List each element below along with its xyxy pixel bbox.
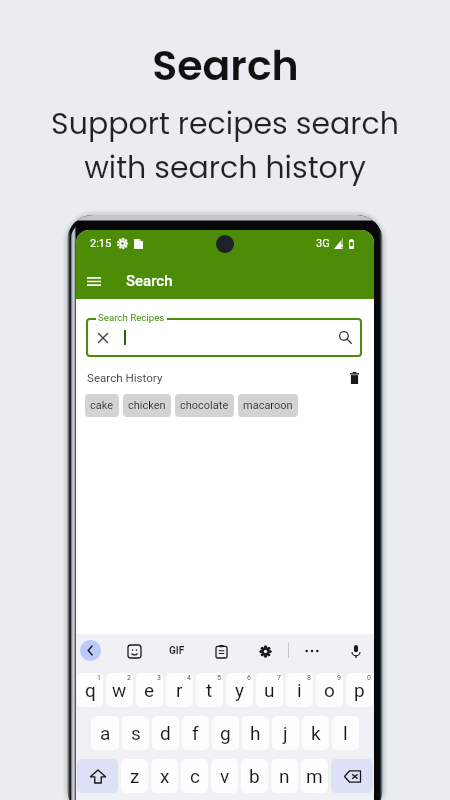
- staticText: 4: [187, 674, 191, 682]
- button[interactable]: h: [242, 716, 269, 750]
- staticText: 8: [307, 674, 311, 682]
- staticText: 2: [127, 674, 131, 682]
- button[interactable]: z: [121, 759, 148, 793]
- staticText: 1: [97, 674, 101, 682]
- button[interactable]: Back: [80, 640, 101, 661]
- staticText: r: [176, 679, 183, 701]
- button[interactable]: p: [346, 673, 373, 707]
- staticText: macaroon: [243, 399, 293, 412]
- button[interactable]: Stickers: [124, 641, 144, 661]
- button[interactable]: q: [77, 673, 103, 707]
- button[interactable]: Clear search: [98, 333, 108, 343]
- staticText: w: [112, 679, 127, 701]
- staticText: n: [279, 765, 290, 787]
- staticText: a: [100, 722, 111, 744]
- staticText: z: [130, 765, 140, 787]
- staticText: chocolate: [180, 399, 229, 412]
- staticText: GIF: [169, 645, 185, 657]
- button[interactable]: w: [106, 673, 133, 707]
- button[interactable]: More options: [302, 641, 322, 661]
- staticText: 2:15: [90, 237, 112, 250]
- staticText: x: [160, 765, 170, 787]
- staticText: g: [220, 722, 231, 744]
- staticText: 3: [157, 674, 161, 682]
- button[interactable]: m: [301, 759, 328, 793]
- button[interactable]: Keyboard settings: [255, 641, 275, 661]
- staticText: Search: [126, 272, 173, 290]
- staticText: f: [192, 722, 199, 744]
- staticText: Search Recipes: [98, 312, 165, 323]
- button[interactable]: v: [211, 759, 238, 793]
- button[interactable]: r: [166, 673, 193, 707]
- staticText: e: [144, 679, 155, 701]
- button[interactable]: x: [151, 759, 178, 793]
- staticText: 5: [217, 674, 221, 682]
- staticText: o: [324, 679, 335, 701]
- button[interactable]: Clipboard: [211, 641, 231, 661]
- staticText: t: [206, 679, 213, 701]
- button[interactable]: t: [196, 673, 223, 707]
- staticText: h: [250, 722, 261, 744]
- staticText: q: [85, 679, 96, 701]
- staticText: j: [283, 722, 288, 744]
- staticText: k: [311, 722, 321, 744]
- staticText: Search: [152, 37, 299, 94]
- button[interactable]: s: [122, 716, 149, 750]
- staticText: p: [354, 679, 365, 701]
- button[interactable]: y: [226, 673, 253, 707]
- staticText: 9: [337, 674, 341, 682]
- staticText: c: [190, 765, 200, 787]
- button[interactable]: Voice input: [346, 641, 366, 661]
- button[interactable]: l: [332, 716, 359, 750]
- staticText: y: [235, 679, 244, 701]
- staticText: Support recipes search with search histo…: [51, 103, 399, 189]
- staticText: i: [297, 679, 302, 701]
- staticText: l: [343, 722, 348, 744]
- staticText: 7: [277, 674, 281, 682]
- button[interactable]: k: [302, 716, 329, 750]
- staticText: b: [249, 765, 260, 787]
- button[interactable]: d: [152, 716, 179, 750]
- staticText: cake: [90, 399, 114, 412]
- button[interactable]: f: [182, 716, 209, 750]
- staticText: 3G: [316, 237, 330, 250]
- button[interactable]: a: [91, 716, 119, 750]
- button[interactable]: Clear search history: [346, 370, 362, 386]
- button[interactable]: b: [241, 759, 268, 793]
- button[interactable]: Open navigation menu: [79, 266, 109, 296]
- staticText: s: [131, 722, 141, 744]
- staticText: v: [220, 765, 230, 787]
- staticText: u: [264, 679, 275, 701]
- staticText: Search History: [87, 371, 163, 385]
- button[interactable]: chicken: [123, 394, 171, 417]
- button[interactable]: e: [136, 673, 163, 707]
- button[interactable]: o: [316, 673, 343, 707]
- button[interactable]: chocolate: [175, 394, 234, 417]
- button[interactable]: cake: [85, 394, 119, 417]
- staticText: m: [306, 765, 323, 787]
- button[interactable]: u: [256, 673, 283, 707]
- staticText: chicken: [128, 399, 166, 412]
- button[interactable]: Backspace: [331, 759, 373, 793]
- button[interactable]: n: [271, 759, 298, 793]
- button[interactable]: macaroon: [238, 394, 298, 417]
- button[interactable]: Search: [339, 331, 352, 344]
- button[interactable]: i: [286, 673, 313, 707]
- button[interactable]: Shift: [77, 759, 118, 793]
- button[interactable]: c: [181, 759, 208, 793]
- button[interactable]: j: [272, 716, 299, 750]
- staticText: 6: [247, 674, 251, 682]
- staticText: 0: [367, 674, 371, 682]
- button[interactable]: GIF: [167, 645, 187, 657]
- staticText: d: [160, 722, 171, 744]
- button[interactable]: g: [212, 716, 239, 750]
